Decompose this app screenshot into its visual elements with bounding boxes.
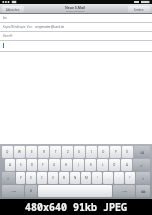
staticText: S	[20, 163, 22, 167]
button[interactable]	[38, 185, 112, 197]
button[interactable]: T	[50, 146, 61, 158]
button[interactable]: Backspace	[134, 146, 150, 158]
staticText: Z	[67, 150, 69, 154]
staticText: B	[63, 176, 65, 180]
button[interactable]: .?123	[2, 185, 24, 197]
staticText: !	[97, 176, 98, 180]
button[interactable]: H	[61, 159, 72, 171]
staticText: ⏎	[140, 164, 143, 167]
staticText: E	[31, 150, 33, 154]
staticText: sergmeister@kund.de	[35, 25, 64, 29]
button[interactable]: F	[38, 159, 48, 171]
button[interactable]: O	[98, 146, 109, 158]
button[interactable]: #	[25, 185, 37, 197]
staticText: ?	[129, 176, 131, 180]
button[interactable]: Z	[62, 146, 73, 158]
staticText: ⇧	[142, 177, 145, 180]
staticText: R	[43, 150, 45, 154]
staticText: L	[102, 163, 104, 167]
button[interactable]: C	[37, 172, 47, 184]
button[interactable]: An:	[0, 14, 152, 22]
staticText: H	[65, 163, 68, 167]
button[interactable]: Send	[128, 6, 150, 13]
staticText: A	[9, 163, 11, 167]
staticText: U	[78, 150, 81, 154]
staticText: Ü	[126, 150, 129, 154]
staticText: .	[119, 176, 120, 180]
staticText: Y	[20, 176, 22, 180]
button[interactable]: U	[74, 146, 85, 158]
button[interactable]: Y	[16, 172, 25, 184]
button[interactable]: X	[26, 172, 36, 184]
staticText: V	[52, 176, 54, 180]
staticText: Betreff:	[3, 34, 13, 38]
staticText: G	[53, 163, 56, 167]
button[interactable]: Shift right	[136, 172, 150, 184]
button[interactable]: Q	[2, 146, 13, 158]
button[interactable]: P	[110, 146, 121, 158]
button[interactable]: ,	[103, 172, 113, 184]
staticText: Senden	[134, 8, 144, 12]
staticText: ⌫	[140, 151, 145, 154]
button[interactable]: E	[26, 146, 37, 158]
staticText: Neue E-Mail	[65, 5, 86, 10]
staticText: ,	[108, 176, 109, 180]
staticText: Q	[6, 150, 9, 154]
staticText: 480x640 91kb JPEG	[25, 200, 127, 214]
staticText: O	[102, 150, 105, 154]
button[interactable]: M	[81, 172, 91, 184]
button[interactable]: Hide keyboard	[136, 185, 150, 197]
staticText: Ö	[113, 163, 116, 167]
button[interactable]: A	[5, 159, 15, 171]
button[interactable]: .?123	[113, 185, 135, 197]
staticText: T	[55, 150, 57, 154]
staticText: Abbrechen	[6, 8, 20, 12]
button[interactable]: !	[92, 172, 102, 184]
button[interactable]: R	[38, 146, 49, 158]
button[interactable]: S	[16, 159, 26, 171]
button[interactable]: K	[85, 159, 96, 171]
staticText: ⇧	[7, 177, 10, 180]
staticText: #	[30, 189, 32, 193]
staticText: Entwurf gesichert	[66, 10, 86, 13]
button[interactable]: ?	[125, 172, 135, 184]
button[interactable]: G	[49, 159, 60, 171]
staticText: D	[31, 163, 34, 167]
button[interactable]: N	[70, 172, 80, 184]
button[interactable]: Ö	[109, 159, 120, 171]
button[interactable]: Shift	[2, 172, 15, 184]
staticText: F	[42, 163, 44, 167]
button[interactable]: Ü	[122, 146, 133, 158]
staticText: Kopie/Blindkopie, Von:	[3, 25, 33, 29]
button[interactable]: B	[59, 172, 69, 184]
button[interactable]: Ä	[121, 159, 132, 171]
button[interactable]: I	[86, 146, 97, 158]
button[interactable]: L	[97, 159, 108, 171]
button[interactable]: Betreff:	[0, 32, 152, 40]
button[interactable]: Cancel	[2, 6, 24, 13]
button[interactable]: Return	[133, 159, 150, 171]
staticText: .?123	[122, 190, 127, 193]
staticText: .?123	[11, 190, 16, 193]
staticText: K	[90, 163, 92, 167]
button[interactable]: D	[27, 159, 37, 171]
button[interactable]: J	[73, 159, 84, 171]
button[interactable]: .	[114, 172, 124, 184]
staticText: Ä	[126, 163, 128, 167]
staticText: M	[85, 176, 88, 180]
button[interactable]: W	[14, 146, 25, 158]
staticText: X	[30, 176, 32, 180]
staticText: W	[18, 150, 21, 154]
staticText: J	[78, 163, 79, 167]
staticText: C	[41, 176, 43, 180]
button[interactable]: V	[48, 172, 58, 184]
button[interactable]: Kopie/Blindkopie, Von:	[0, 23, 152, 31]
staticText: N	[74, 176, 77, 180]
staticText: An:	[3, 16, 8, 20]
staticText: I	[91, 150, 93, 154]
staticText: P	[115, 150, 117, 154]
staticText: ⌨	[141, 190, 146, 193]
